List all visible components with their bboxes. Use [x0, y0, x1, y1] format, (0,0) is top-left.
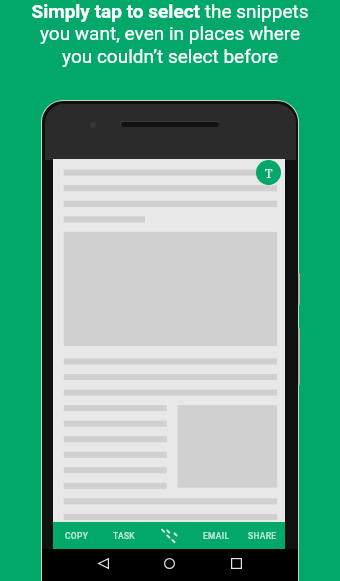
staticText: EMAIL — [203, 531, 230, 541]
button[interactable]: Recent apps — [224, 551, 248, 575]
staticText: T — [265, 165, 273, 181]
button[interactable]: EMAIL — [193, 522, 239, 549]
staticText: SHARE — [248, 531, 277, 541]
button[interactable]: TASK — [100, 522, 147, 549]
staticText: TASK — [113, 531, 135, 541]
button[interactable]: Magic select — [147, 522, 193, 549]
button[interactable]: Back — [91, 551, 115, 575]
staticText: COPY — [65, 531, 89, 541]
button[interactable]: Home — [157, 551, 181, 575]
button[interactable]: Translate — [256, 160, 281, 185]
staticText: Simply tap to select the snippets you wa… — [0, 0, 340, 68]
button[interactable]: COPY — [53, 522, 100, 549]
button[interactable]: SHARE — [239, 522, 285, 549]
